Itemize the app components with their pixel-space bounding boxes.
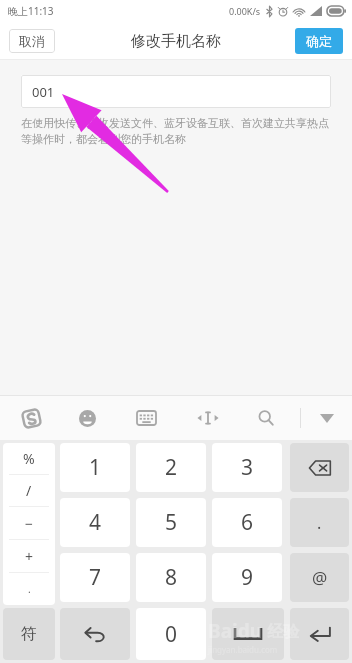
staticText: 6 [241,508,254,537]
button[interactable]: 5 [136,498,206,547]
staticText: @ [312,566,328,589]
staticText: 符 [21,624,37,644]
staticText: 经验 [263,620,300,642]
button[interactable]: 2 [136,443,206,492]
staticText: Baidu [208,618,263,644]
button[interactable]: 4 [60,498,130,547]
button[interactable]: Move cursor [193,403,223,433]
button[interactable]: 7 [60,553,130,602]
staticText: 在使用快传、接收发送文件、蓝牙设备互联、首次建立共享热点等操作时，都会看到您的手… [21,116,331,146]
button[interactable]: Emoji [72,403,102,433]
button[interactable]: 001 [21,75,331,108]
staticText: 1 [89,453,102,482]
staticText: 7 [89,563,102,592]
staticText: 确定 [306,33,332,49]
button[interactable]: 1 [60,443,130,492]
button[interactable]: Keyboard layout [131,403,161,433]
button[interactable]: Hide keyboard [312,403,342,433]
button[interactable]: 取消 [9,29,55,53]
staticText: 0.00K/s [229,5,261,17]
staticText: . [317,512,322,534]
button[interactable]: 9 [212,553,282,602]
staticText: 0 [165,620,178,649]
button[interactable]: Key [3,608,55,660]
staticText: 001 [32,83,55,101]
staticText: 晚上11:13 [8,4,54,18]
button[interactable]: 8 [136,553,206,602]
staticText: + [25,547,34,566]
button[interactable]: Key [290,608,349,660]
button[interactable]: 6 [212,498,282,547]
staticText: 2 [165,453,178,482]
button[interactable]: Search [251,403,281,433]
button[interactable]: Key [290,553,349,602]
staticText: jingyan.baidu.com [208,644,278,655]
button[interactable]: 3 [212,443,282,492]
button[interactable]: 0 [136,608,206,660]
button[interactable]: Key [290,443,349,492]
staticText: % [23,449,35,468]
staticText: . [28,582,31,596]
staticText: / [26,481,32,500]
staticText: 9 [241,563,254,592]
button[interactable]: Key [290,498,349,547]
button[interactable]: Key [212,608,284,660]
staticText: 5 [165,508,178,537]
staticText: 8 [165,563,178,592]
staticText: 4 [89,508,102,537]
staticText: − [25,514,34,533]
button[interactable]: % [3,443,55,605]
button[interactable]: Sogou input method [16,403,46,433]
button[interactable]: Key [60,608,130,660]
staticText: 修改手机名称 [131,32,221,51]
staticText: 取消 [19,33,45,49]
staticText: 3 [241,453,254,482]
button[interactable]: 确定 [295,28,343,54]
